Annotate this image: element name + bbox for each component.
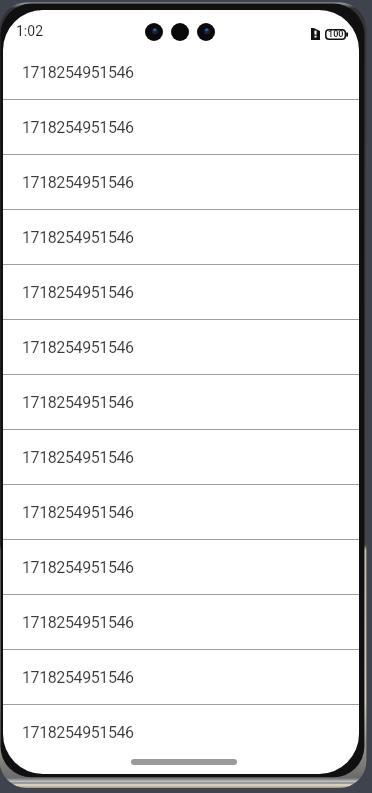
staticText: 1718254951546 — [22, 503, 134, 522]
staticText: 1718254951546 — [22, 613, 134, 632]
staticText: 1718254951546 — [22, 228, 134, 247]
button[interactable]: 1718254951546 — [3, 649, 359, 704]
button[interactable]: 1718254951546 — [3, 484, 359, 539]
button[interactable]: 1718254951546 — [3, 264, 359, 319]
staticText: 1718254951546 — [22, 283, 134, 302]
staticText: 1718254951546 — [22, 448, 134, 467]
staticText: 1718254951546 — [22, 723, 134, 742]
staticText: 1718254951546 — [22, 173, 134, 192]
staticText: 1718254951546 — [22, 558, 134, 577]
button[interactable]: 1718254951546 — [3, 154, 359, 209]
button[interactable]: 1718254951546 — [3, 539, 359, 594]
staticText: 1718254951546 — [22, 118, 134, 137]
staticText: 1718254951546 — [22, 668, 134, 687]
staticText: 100 — [328, 29, 344, 40]
staticText: 1718254951546 — [22, 338, 134, 357]
button[interactable]: 1718254951546 — [3, 704, 359, 759]
staticText: 1:02 — [16, 23, 43, 39]
staticText: 1718254951546 — [22, 63, 134, 82]
button[interactable]: 1718254951546 — [3, 429, 359, 484]
button[interactable]: 1718254951546 — [3, 319, 359, 374]
button[interactable]: 1718254951546 — [3, 209, 359, 264]
button[interactable]: 1718254951546 — [3, 99, 359, 154]
staticText: 1718254951546 — [22, 393, 134, 412]
button[interactable]: 1718254951546 — [3, 594, 359, 649]
button[interactable]: 1718254951546 — [3, 44, 359, 99]
button[interactable]: 1718254951546 — [3, 374, 359, 429]
